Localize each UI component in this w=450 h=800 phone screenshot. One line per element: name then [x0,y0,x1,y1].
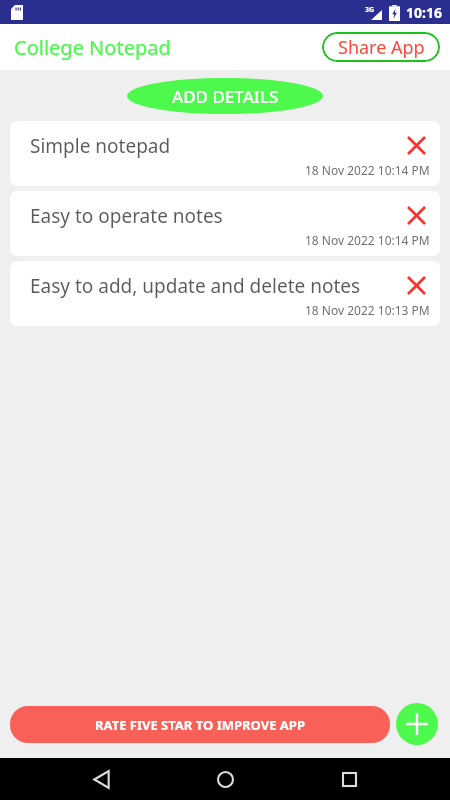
staticText: 18 Nov 2022 10:14 PM [305,162,430,178]
staticText: Easy to operate notes [30,203,223,229]
button[interactable]: Delete note [400,199,432,231]
button[interactable]: Delete note [400,129,432,161]
staticText: Easy to add, update and delete notes [30,273,361,299]
staticText: 18 Nov 2022 10:14 PM [305,232,430,248]
button[interactable]: Back [78,758,124,800]
button[interactable]: Delete note [400,269,432,301]
button[interactable]: Recent apps [326,758,372,800]
staticText: 3G [365,5,375,15]
button[interactable]: Simple notepad [10,121,440,186]
button[interactable]: Home [202,758,248,800]
staticText: Share App [338,35,425,60]
staticText: ADD DETAILS [172,85,279,108]
button[interactable]: Easy to operate notes [10,191,440,256]
button[interactable]: Add note [396,703,438,745]
staticText: RATE FIVE STAR TO IMPROVE APP [95,716,305,734]
staticText: 18 Nov 2022 10:13 PM [305,302,430,318]
button[interactable]: ADD DETAILS [127,78,323,114]
button[interactable]: RATE FIVE STAR TO IMPROVE APP [10,706,390,743]
staticText: College Notepad [14,34,171,61]
button[interactable]: Easy to add, update and delete notes [10,261,440,326]
button[interactable]: Share App [322,32,440,62]
staticText: 10:16 [406,3,442,22]
staticText: Simple notepad [30,133,171,159]
